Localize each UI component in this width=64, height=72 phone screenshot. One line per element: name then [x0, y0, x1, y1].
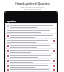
- button[interactable]: Favorite: [6, 49, 56, 53]
- button[interactable]: Quotes: [5, 12, 57, 23]
- staticText: Save the lines that move you, revisit th…: [20, 6, 45, 10]
- button[interactable]: Favorite: [6, 64, 56, 68]
- button[interactable]: Favorite: [6, 39, 56, 43]
- button[interactable]: [6, 44, 56, 48]
- button[interactable]: [6, 34, 56, 38]
- button[interactable]: Favorite: [6, 59, 56, 63]
- button[interactable]: Favorite: [6, 69, 56, 71]
- button[interactable]: [6, 29, 56, 33]
- staticText: Quotes: [7, 19, 16, 22]
- button[interactable]: [6, 24, 56, 28]
- button[interactable]: [6, 54, 56, 58]
- staticText: Hand-picked Quotes: [15, 1, 50, 6]
